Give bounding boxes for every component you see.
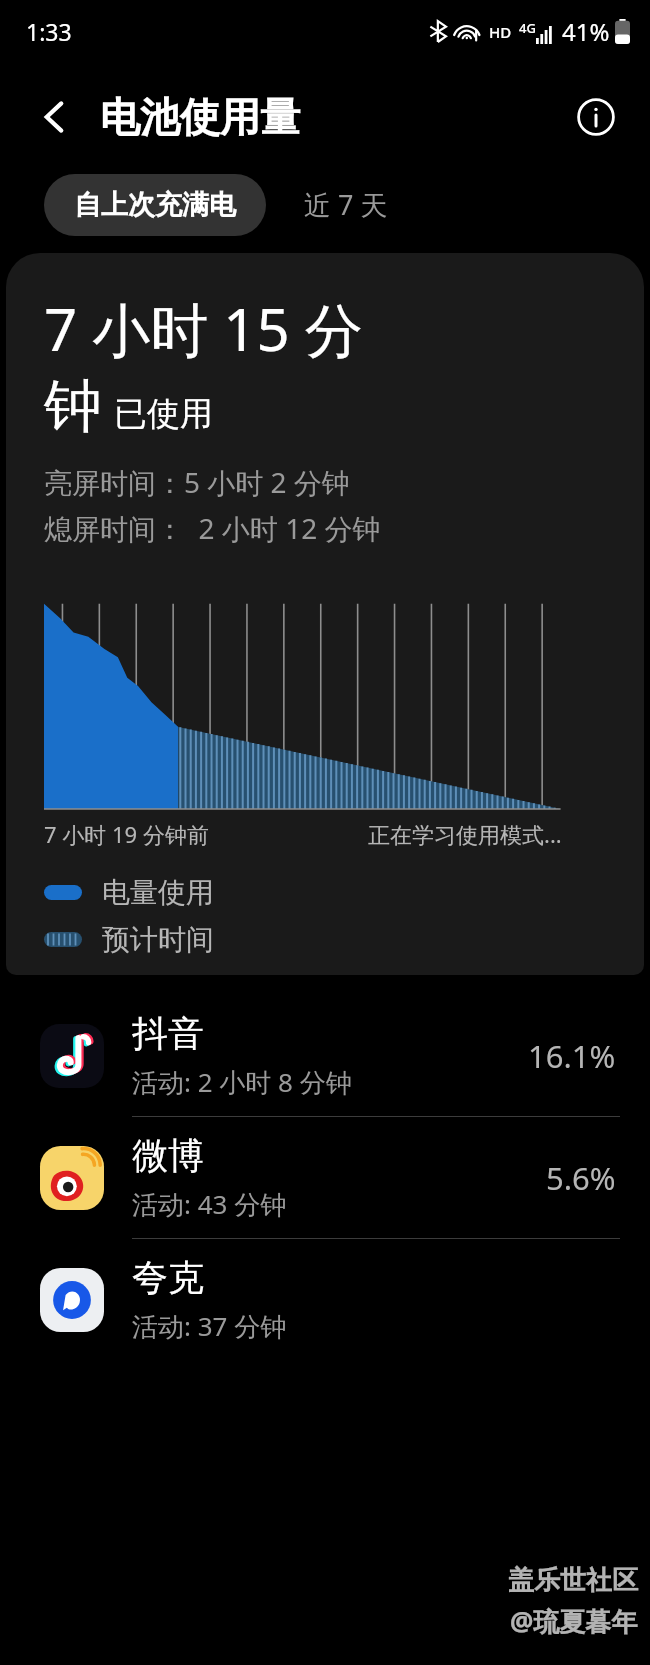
button[interactable]: 7 小时 15 分 [6,253,644,975]
button[interactable]: 自上次充满电 [44,174,266,236]
staticText: 自上次充满电 [74,188,236,222]
staticText: 活动: 2 小时 8 分钟 [132,1064,352,1100]
staticText: 电量使用 [102,875,214,910]
button[interactable]: Back [26,89,82,145]
staticText: 7 小时 19 分钟前 [44,819,209,849]
staticText: HD [489,22,512,42]
button[interactable]: Information [568,89,624,145]
staticText: 7 小时 15 分 [44,289,363,368]
staticText: 预计时间 [102,922,214,957]
staticText: 微博 [132,1133,204,1178]
staticText: 活动: 37 分钟 [132,1308,287,1344]
button[interactable]: 微博 [0,1117,650,1238]
button[interactable]: 抖音 [0,995,650,1116]
staticText: 1:33 [26,16,72,47]
button[interactable]: 近 7 天 [266,172,426,237]
staticText: 钟 [44,370,102,443]
staticText: 41% [562,15,610,48]
staticText: 亮屏时间：5 小时 2 分钟 [44,463,350,501]
staticText: 近 7 天 [304,186,388,223]
staticText: 夸克 [132,1255,204,1300]
staticText: 熄屏时间： 2 小时 12 分钟 [44,509,381,547]
staticText: @琉夏暮年 [510,1603,638,1639]
staticText: 抖音 [132,1011,204,1056]
staticText: 已使用 [114,393,213,435]
staticText: 4G [519,19,536,37]
staticText: 正在学习使用模式... [368,819,562,849]
staticText: 16.1% [528,1035,616,1077]
staticText: 电池使用量 [100,92,300,142]
staticText: 盖乐世社区 [508,1564,638,1597]
staticText: 5.6% [546,1157,616,1199]
button[interactable]: 夸克 [0,1239,650,1360]
staticText: 活动: 43 分钟 [132,1186,287,1222]
